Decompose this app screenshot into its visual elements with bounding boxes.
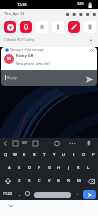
button[interactable] xyxy=(1,176,14,186)
button[interactable] xyxy=(83,190,96,199)
button[interactable] xyxy=(84,21,96,33)
staticText: E xyxy=(23,152,26,158)
button[interactable]: F xyxy=(35,163,44,173)
button[interactable]: K xyxy=(74,163,83,173)
staticText: Thu, Apr 23 xyxy=(4,11,25,16)
staticText: H xyxy=(57,165,61,171)
staticText: Ricky GR xyxy=(16,53,34,59)
staticText: O xyxy=(82,152,86,158)
staticText: P xyxy=(92,152,95,158)
button[interactable]: V xyxy=(45,176,54,186)
button[interactable] xyxy=(34,192,71,198)
button[interactable]: E xyxy=(20,150,29,160)
staticText: W xyxy=(13,152,17,158)
button[interactable]: C xyxy=(35,176,44,186)
button[interactable] xyxy=(24,190,31,197)
staticText: Reply xyxy=(7,75,17,80)
button[interactable]: X xyxy=(25,176,34,186)
button[interactable]: G xyxy=(45,163,54,173)
staticText: I xyxy=(73,152,75,158)
button[interactable]: N xyxy=(64,176,73,186)
button[interactable] xyxy=(36,21,48,33)
button[interactable] xyxy=(85,176,98,186)
button[interactable]: U xyxy=(59,150,68,160)
button[interactable] xyxy=(20,21,32,33)
button[interactable]: Z xyxy=(15,176,24,186)
staticText: U xyxy=(62,152,66,158)
button[interactable] xyxy=(52,21,64,33)
button[interactable]: R xyxy=(30,150,39,160)
button[interactable] xyxy=(8,204,14,208)
button[interactable]: . xyxy=(73,189,82,199)
staticText: RG xyxy=(7,57,12,61)
button[interactable]: P xyxy=(89,150,98,160)
staticText: , xyxy=(19,191,21,197)
button[interactable]: A xyxy=(5,163,14,173)
staticText: K xyxy=(77,165,80,171)
button[interactable]: T xyxy=(40,150,49,160)
staticText: Y xyxy=(53,152,56,158)
staticText: L xyxy=(87,165,90,171)
button[interactable]: S xyxy=(15,163,24,173)
staticText: V xyxy=(48,178,51,184)
staticText: D xyxy=(28,165,32,171)
button[interactable]: Q xyxy=(1,150,10,160)
button[interactable]: M xyxy=(74,176,83,186)
staticText: Messages • New message xyxy=(10,48,44,52)
staticText: R xyxy=(33,152,36,158)
staticText: S xyxy=(18,165,21,171)
staticText: Q xyxy=(4,152,8,158)
staticText: 12:36 xyxy=(17,2,27,7)
button[interactable] xyxy=(68,21,80,33)
button[interactable]: H xyxy=(54,163,63,173)
staticText: T-Mobile Wi-Fi Calling xyxy=(4,38,35,42)
button[interactable]: I xyxy=(69,150,78,160)
button[interactable]: B xyxy=(54,176,63,186)
staticText: X xyxy=(28,178,31,184)
staticText: . xyxy=(77,191,79,197)
button[interactable] xyxy=(1,47,97,70)
staticText: J xyxy=(68,165,70,171)
staticText: F xyxy=(38,165,41,171)
staticText: G xyxy=(48,165,52,171)
staticText: B xyxy=(57,178,60,184)
staticText: C xyxy=(38,178,41,184)
staticText: 34% xyxy=(77,1,84,6)
button[interactable] xyxy=(85,75,94,84)
staticText: Z xyxy=(18,178,21,184)
button[interactable] xyxy=(4,21,16,33)
staticText: New phone, who dis? xyxy=(16,61,50,66)
button[interactable]: ?123 xyxy=(1,189,14,199)
staticText: A xyxy=(8,165,11,171)
button[interactable]: GIF xyxy=(22,141,28,145)
button[interactable]: L xyxy=(84,163,93,173)
button[interactable]: D xyxy=(25,163,34,173)
staticText: N xyxy=(67,178,71,184)
staticText: ?123 xyxy=(3,191,13,197)
button[interactable]: J xyxy=(64,163,73,173)
button[interactable]: , xyxy=(15,189,24,199)
button[interactable]: O xyxy=(79,150,88,160)
button[interactable]: W xyxy=(10,150,19,160)
button[interactable] xyxy=(1,70,97,86)
button[interactable] xyxy=(0,139,98,148)
button[interactable]: Y xyxy=(50,150,59,160)
staticText: T xyxy=(43,152,46,158)
staticText: M xyxy=(77,178,81,184)
